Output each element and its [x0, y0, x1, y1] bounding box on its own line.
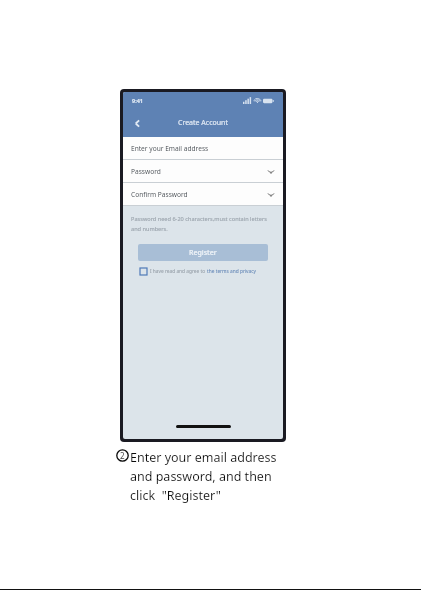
staticText: and numbers.	[131, 225, 168, 233]
staticText: and password, and then	[130, 468, 272, 485]
staticText: 2	[120, 450, 125, 461]
button[interactable]: Register	[138, 244, 268, 261]
staticText: I have read and agree to	[150, 268, 207, 275]
staticText: Confirm Password	[131, 190, 188, 199]
button[interactable]: Enter your Email address	[123, 137, 283, 159]
button[interactable]: I have read and agree to	[140, 268, 256, 275]
staticText: Password	[131, 167, 161, 176]
staticText: Create Account	[178, 118, 228, 128]
button[interactable]: Confirm Password	[123, 183, 283, 205]
button[interactable]: Password	[123, 160, 283, 182]
staticText: Register	[189, 248, 217, 258]
staticText: the terms and privacy	[207, 268, 256, 275]
staticText: Password need 6-20 characters,must conta…	[131, 215, 267, 223]
staticText: Enter your Email address	[131, 144, 209, 153]
button[interactable]: Show password	[266, 166, 276, 176]
staticText: Enter your email address	[130, 449, 277, 466]
staticText: 9:41	[132, 97, 143, 104]
staticText: click "Register"	[130, 487, 221, 504]
button[interactable]: Show password	[266, 189, 276, 199]
button[interactable]: Back	[127, 113, 147, 133]
